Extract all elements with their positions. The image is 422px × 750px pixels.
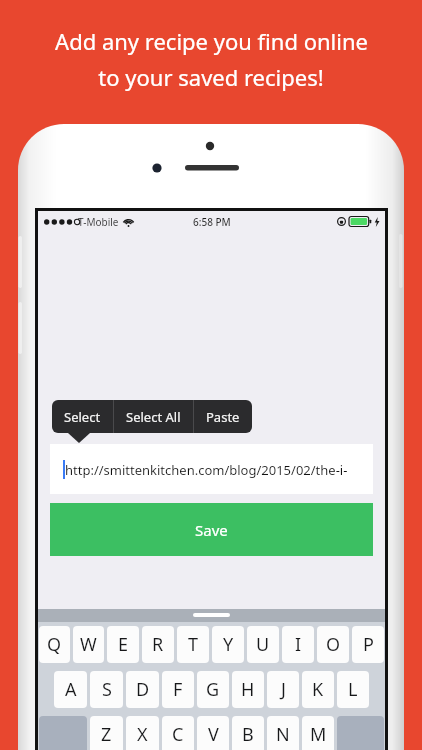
button[interactable]: C: [162, 716, 194, 750]
button[interactable]: Q: [39, 626, 70, 663]
staticText: H: [241, 677, 255, 702]
button[interactable]: P: [352, 626, 384, 663]
staticText: to your saved recipes!: [98, 62, 324, 92]
button[interactable]: Y: [212, 626, 244, 663]
button[interactable]: H: [232, 671, 264, 708]
staticText: 6:58 PM: [193, 215, 231, 229]
button[interactable]: T: [177, 626, 209, 663]
staticText: Select: [64, 408, 101, 426]
staticText: T-Mobile: [78, 215, 119, 229]
button[interactable]: D: [126, 671, 159, 708]
staticText: X: [137, 722, 148, 747]
button[interactable]: K: [302, 671, 334, 708]
staticText: Save: [195, 520, 228, 540]
button[interactable]: W: [73, 626, 104, 663]
button[interactable]: Save: [50, 503, 373, 556]
staticText: http://smittenkitchen.com/blog/2015/02/t…: [65, 461, 373, 479]
button[interactable]: J: [267, 671, 299, 708]
staticText: Select All: [126, 408, 181, 426]
staticText: Paste: [206, 408, 240, 426]
staticText: A: [65, 677, 77, 702]
button[interactable]: Select: [52, 400, 113, 433]
button[interactable]: U: [247, 626, 279, 663]
staticText: F: [173, 677, 183, 702]
button[interactable]: R: [142, 626, 174, 663]
staticText: C: [172, 722, 184, 747]
button[interactable]: M: [302, 716, 334, 750]
button[interactable]: I: [282, 626, 314, 663]
staticText: W: [80, 632, 97, 657]
button[interactable]: V: [197, 716, 229, 750]
button[interactable]: O: [317, 626, 349, 663]
staticText: O: [326, 632, 341, 657]
button[interactable]: N: [267, 716, 299, 750]
staticText: V: [208, 722, 219, 747]
staticText: I: [295, 632, 302, 657]
staticText: N: [276, 722, 290, 747]
button[interactable]: E: [107, 626, 139, 663]
staticText: T: [188, 632, 199, 657]
staticText: J: [281, 677, 286, 702]
button[interactable]: A: [54, 671, 87, 708]
button[interactable]: S: [90, 671, 123, 708]
staticText: P: [363, 632, 374, 657]
staticText: L: [348, 677, 358, 702]
button[interactable]: F: [162, 671, 194, 708]
button[interactable]: Paste: [194, 400, 252, 433]
staticText: R: [152, 632, 164, 657]
staticText: E: [118, 632, 129, 657]
button[interactable]: Select All: [114, 400, 193, 433]
staticText: Y: [223, 632, 234, 657]
staticText: Z: [101, 722, 112, 747]
staticText: K: [312, 677, 324, 702]
staticText: B: [242, 722, 254, 747]
staticText: S: [102, 677, 112, 702]
staticText: Add any recipe you find online: [55, 26, 368, 56]
staticText: M: [310, 722, 327, 747]
button[interactable]: X: [126, 716, 159, 750]
button[interactable]: B: [232, 716, 264, 750]
button[interactable]: G: [197, 671, 229, 708]
button[interactable]: http://smittenkitchen.com/blog/2015/02/t…: [50, 444, 373, 494]
staticText: D: [136, 677, 150, 702]
button[interactable]: Z: [90, 716, 123, 750]
staticText: Q: [47, 632, 62, 657]
staticText: U: [256, 632, 270, 657]
staticText: G: [206, 677, 220, 702]
button[interactable]: L: [337, 671, 369, 708]
